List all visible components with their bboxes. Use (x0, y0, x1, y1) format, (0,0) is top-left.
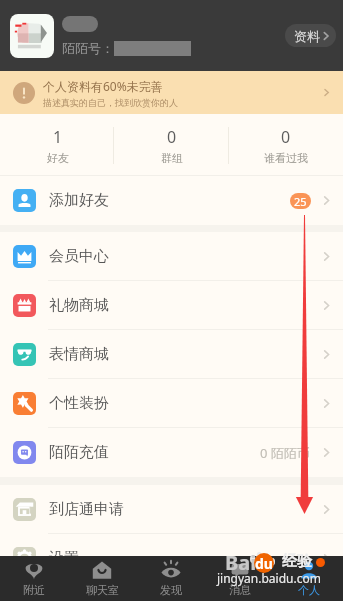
button[interactable]: 个人 (274, 556, 343, 601)
button[interactable]: 到店通申请 (0, 485, 343, 534)
staticText: 资料 (294, 28, 320, 44)
staticText: 个人资料有60%未完善 (43, 78, 163, 94)
staticText: 聊天室 (86, 583, 119, 597)
button[interactable]: 资料 (285, 24, 336, 47)
staticText: 发现 (160, 583, 182, 597)
button[interactable]: 0 (115, 114, 229, 176)
staticText: 群组 (161, 151, 183, 165)
staticText: 表情商城 (49, 345, 109, 364)
staticText: 0 (167, 126, 177, 148)
staticText: 1 (53, 126, 63, 148)
staticText: 描述真实的自己，找到欣赏你的人 (43, 97, 178, 108)
button[interactable]: 表情商城 (0, 330, 343, 379)
staticText: 附近 (23, 583, 45, 597)
staticText: 0 (281, 126, 291, 148)
button[interactable]: Avatar (10, 14, 54, 58)
staticText: 25 (294, 194, 307, 209)
button[interactable]: 0 (229, 114, 343, 176)
button[interactable]: 1 (0, 114, 115, 176)
staticText: 陌陌号： (62, 40, 114, 56)
staticText: Bai (225, 549, 257, 576)
staticText: 到店通申请 (49, 500, 124, 519)
button[interactable]: 设置 (0, 534, 343, 583)
button[interactable]: 发现 (136, 556, 205, 601)
staticText: 经验 (282, 552, 312, 571)
button[interactable]: 附近 (0, 556, 68, 601)
staticText: 0 陌陌币 (260, 444, 310, 462)
staticText: 添加好友 (49, 191, 109, 210)
staticText: jingyan.baidu.com (217, 570, 321, 586)
button[interactable]: 消息 (205, 556, 274, 601)
button[interactable]: 聊天室 (68, 556, 136, 601)
staticText: 消息 (229, 583, 251, 597)
button[interactable]: 个性装扮 (0, 379, 343, 428)
button[interactable]: 陌陌充值 (0, 428, 343, 477)
staticText: 谁看过我 (264, 151, 308, 165)
button[interactable]: 会员中心 (0, 232, 343, 281)
staticText: 礼物商城 (49, 296, 109, 315)
staticText: 设置 (49, 549, 79, 568)
button[interactable]: 礼物商城 (0, 281, 343, 330)
button[interactable]: 添加好友 (0, 176, 343, 225)
staticText: 个性装扮 (49, 394, 109, 413)
staticText: 会员中心 (49, 247, 109, 266)
staticText: du (255, 554, 273, 573)
button[interactable]: 个人资料有60%未完善 (0, 71, 343, 114)
staticText: 个人 (298, 583, 320, 597)
staticText: 陌陌充值 (49, 443, 109, 462)
staticText: 好友 (47, 151, 69, 165)
